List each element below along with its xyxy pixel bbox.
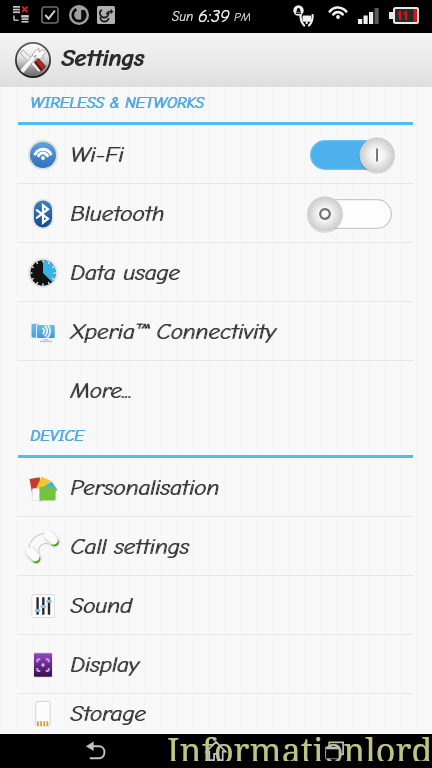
staticText: PM [230, 10, 251, 24]
button[interactable]: Home [168, 734, 264, 768]
button[interactable]: Sound [0, 576, 432, 635]
button[interactable]: Call settings [0, 517, 432, 576]
button[interactable]: Off [310, 196, 392, 232]
button[interactable]: Wi-Fi [0, 125, 432, 184]
staticText: Xperia™ Connectivity [70, 318, 276, 344]
staticText: Storage [71, 700, 147, 726]
staticText: Informationlord [167, 727, 432, 761]
staticText: WIRELESS & NETWORKS [31, 94, 205, 112]
button[interactable]: On [310, 137, 392, 173]
button[interactable]: Data usage [0, 243, 432, 302]
staticText: Wi-Fi [71, 141, 125, 167]
button[interactable]: Personalisation [0, 458, 432, 517]
staticText: More... [70, 377, 132, 403]
staticText: DEVICE [31, 427, 85, 445]
staticText: Bluetooth [71, 200, 165, 226]
staticText: 6:39 [198, 6, 230, 27]
button[interactable]: More... [0, 361, 432, 420]
button[interactable]: Xperia™ Connectivity [0, 302, 432, 361]
staticText: Display [70, 651, 139, 677]
staticText: Sun [172, 9, 198, 24]
staticText: Wi-Fi [70, 141, 124, 167]
staticText: Settings [62, 44, 145, 72]
staticText: DEVICE [30, 427, 84, 445]
staticText: Call settings [70, 533, 189, 559]
staticText: Personalisation [70, 474, 219, 500]
staticText: Sound [70, 592, 132, 618]
staticText: Data usage [71, 259, 181, 285]
staticText: Settings [61, 44, 144, 72]
staticText: Bluetooth [70, 200, 164, 226]
staticText: Sound [71, 592, 133, 618]
button[interactable]: Display [0, 635, 432, 694]
other: Settings icon [15, 42, 51, 78]
staticText: Xperia™ Connectivity [71, 318, 277, 344]
staticText: Call settings [71, 533, 190, 559]
staticText: WIRELESS & NETWORKS [30, 94, 204, 112]
staticText: Display [71, 651, 140, 677]
staticText: Data usage [70, 259, 180, 285]
button[interactable]: Storage [0, 694, 432, 734]
button[interactable]: Bluetooth [0, 184, 432, 243]
staticText: More... [71, 377, 133, 403]
button[interactable]: Back [48, 734, 144, 768]
staticText: Storage [70, 700, 146, 726]
button[interactable]: Recent apps [286, 734, 382, 768]
staticText: Personalisation [71, 474, 220, 500]
